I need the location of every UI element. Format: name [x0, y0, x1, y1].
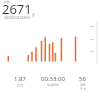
staticText: 400	[90, 37, 95, 40]
staticText: 步数	[4, 0, 10, 4]
staticText: 200	[90, 49, 95, 52]
staticText: 消耗 千卡	[80, 83, 86, 91]
staticText: 56	[79, 75, 86, 83]
staticText: 00:33:00	[41, 75, 65, 83]
staticText: 运动时长	[47, 83, 59, 87]
staticText: 公里	[17, 83, 23, 87]
button[interactable]: 56	[79, 75, 86, 91]
staticText: 步	[32, 13, 36, 17]
staticText: 600	[90, 24, 95, 27]
staticText: 2671	[2, 0, 32, 18]
button[interactable]: 00:33:00	[41, 75, 65, 87]
staticText: 2022年04月26日	[4, 15, 31, 20]
staticText: 1.87	[14, 75, 26, 83]
button[interactable]: 1.87	[14, 75, 26, 87]
